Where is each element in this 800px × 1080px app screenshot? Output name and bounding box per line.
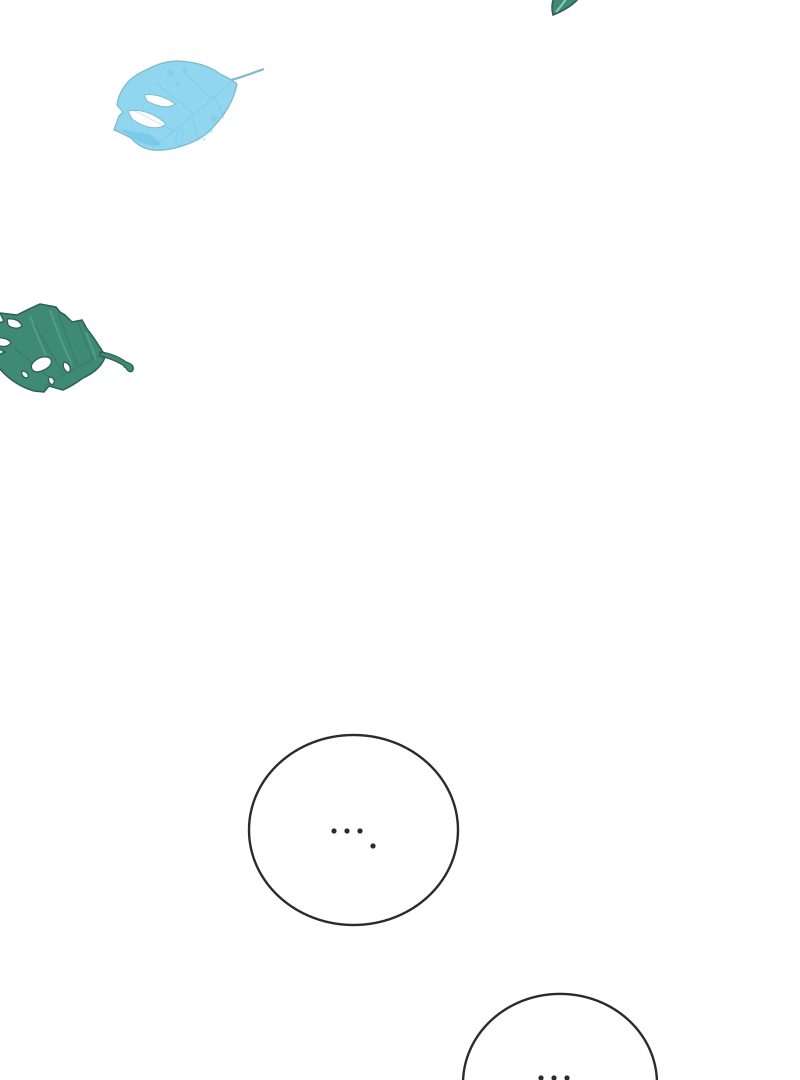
button[interactable]: Episode panel (0, 0, 800, 1080)
